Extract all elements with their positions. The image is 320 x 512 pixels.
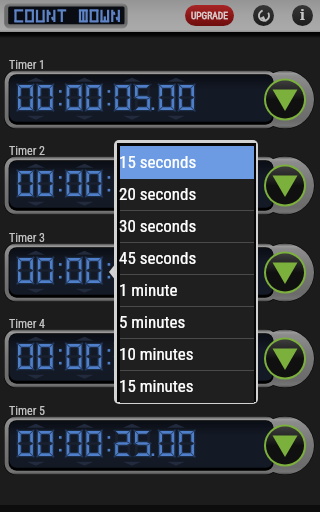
button[interactable]: 5 minutes (120, 307, 254, 338)
button[interactable]: Set Timer 5 duration (256, 416, 315, 475)
button[interactable]: Timer 1 value 00:00:05.00 (4, 70, 278, 129)
staticText: 1 minute (119, 280, 178, 300)
staticText: Timer 4 (9, 317, 45, 331)
button[interactable]: 45 seconds (120, 243, 254, 274)
staticText: 15 seconds (119, 152, 197, 172)
staticText: 30 seconds (119, 216, 197, 236)
button[interactable]: Timer 4 value 00:00:20.00 (4, 329, 278, 388)
staticText: 45 seconds (119, 248, 197, 268)
button[interactable]: Set Timer 2 duration (256, 156, 315, 215)
button[interactable]: Set Timer 3 duration (256, 243, 315, 302)
button[interactable]: Timer 3 value 00:00:15.00 (4, 243, 278, 302)
button[interactable]: UPGRADE (185, 5, 234, 26)
staticText: UPGRADE (191, 10, 228, 21)
staticText: Timer 5 (9, 404, 45, 418)
staticText: 15 minutes (119, 376, 194, 396)
button[interactable]: Set Timer 1 duration (256, 70, 315, 129)
button[interactable]: Set Timer 4 duration (256, 329, 315, 388)
button[interactable]: 15 seconds (120, 146, 254, 179)
button[interactable]: 30 seconds (120, 211, 254, 242)
button[interactable]: Info (292, 5, 313, 26)
staticText: Timer 1 (9, 58, 45, 72)
button[interactable]: Timer 2 value 00:00:10.00 (4, 156, 278, 215)
staticText: 10 minutes (119, 344, 194, 364)
staticText: 20 seconds (119, 184, 197, 204)
staticText: i (300, 5, 305, 24)
button[interactable]: Timer 5 value 00:00:25.00 (4, 416, 278, 475)
button[interactable]: Reset all timers (253, 5, 274, 26)
button[interactable]: 1 minute (120, 275, 254, 306)
button[interactable]: 15 minutes (120, 371, 254, 403)
staticText: Timer 2 (9, 144, 45, 158)
staticText: Timer 3 (9, 231, 45, 245)
button[interactable]: 20 seconds (120, 179, 254, 210)
staticText: 5 minutes (119, 312, 186, 332)
button[interactable]: 10 minutes (120, 339, 254, 370)
